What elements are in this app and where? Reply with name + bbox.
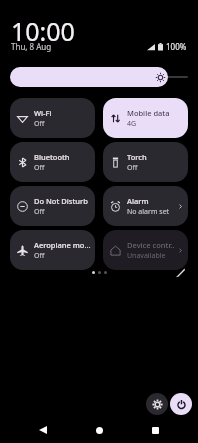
button[interactable]: Torch: [103, 142, 188, 182]
button[interactable]: Back: [30, 417, 56, 443]
staticText: No alarm set: [127, 207, 170, 217]
staticText: 4G: [127, 119, 137, 129]
staticText: Aeroplane mode: [34, 240, 91, 250]
staticText: Off: [127, 163, 138, 173]
button[interactable]: Device contr..: [103, 230, 188, 270]
button[interactable]: Brightness: [10, 67, 188, 87]
button[interactable]: Do Not Disturb: [10, 186, 95, 226]
button[interactable]: Settings: [146, 393, 168, 415]
button[interactable]: Edit tiles: [172, 264, 188, 280]
staticText: Unavailable: [127, 251, 166, 261]
button[interactable]: Mobile data: [103, 98, 188, 138]
button[interactable]: Wi-Fi: [10, 98, 95, 138]
staticText: Device contr..: [127, 240, 175, 250]
button[interactable]: Alarm: [103, 186, 188, 226]
staticText: Off: [34, 207, 45, 217]
staticText: Wi-Fi: [34, 108, 52, 118]
staticText: 10:00: [11, 14, 75, 48]
staticText: Off: [34, 163, 45, 173]
staticText: Thu, 8 Aug: [11, 41, 52, 52]
staticText: Do Not Disturb: [34, 196, 88, 206]
button[interactable]: Home: [86, 417, 112, 443]
staticText: 100%: [166, 41, 187, 52]
staticText: Alarm: [127, 196, 149, 206]
staticText: Off: [34, 119, 45, 129]
button[interactable]: Aeroplane mode: [10, 230, 95, 270]
button[interactable]: Power: [170, 393, 192, 415]
button[interactable]: Recent apps: [142, 417, 168, 443]
staticText: Mobile data: [127, 108, 170, 118]
staticText: Bluetooth: [34, 152, 70, 162]
staticText: Torch: [127, 152, 147, 162]
button[interactable]: Bluetooth: [10, 142, 95, 182]
staticText: Off: [34, 251, 45, 261]
